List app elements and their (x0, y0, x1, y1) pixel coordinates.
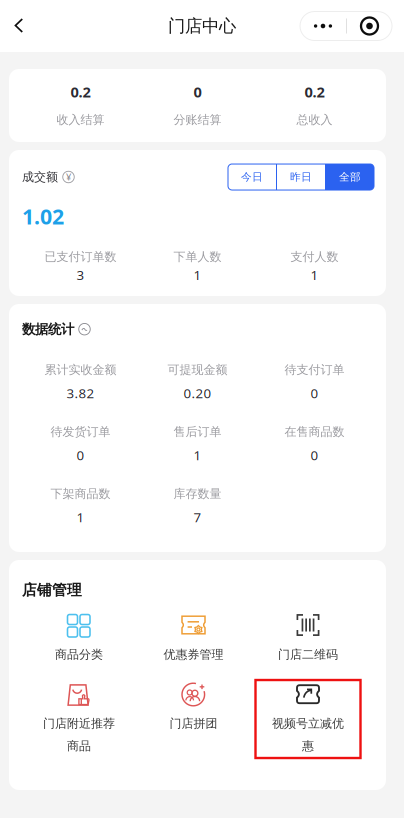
staticText: 店铺管理 (22, 581, 82, 599)
staticText: 1 (76, 508, 84, 526)
staticText: 视频号立减优 (272, 716, 344, 731)
staticText: 3.82 (66, 384, 94, 402)
staticText: 1 (193, 446, 201, 464)
staticText: 0 (310, 446, 318, 464)
staticText: 待发货订单 (50, 424, 110, 439)
staticText: 售后订单 (173, 424, 221, 439)
staticText: 0 (76, 446, 84, 464)
button[interactable]: 今日 (228, 164, 276, 190)
staticText: 门店附近推荐 (43, 716, 115, 731)
staticText: 商品分类 (55, 647, 103, 662)
staticText: 数据统计 (22, 321, 74, 337)
staticText: 已支付订单数 (44, 249, 116, 264)
staticText: 0.20 (183, 384, 211, 402)
staticText: 总收入 (296, 112, 332, 127)
staticText: 分账结算 (173, 112, 221, 127)
staticText: 门店拼团 (169, 716, 217, 731)
staticText: 收入结算 (56, 112, 104, 127)
staticText: 0 (310, 384, 318, 402)
staticText: 下单人数 (173, 249, 221, 264)
staticText: 7 (193, 508, 201, 526)
staticText: 今日 (241, 170, 263, 183)
button[interactable]: 昨日 (277, 164, 325, 190)
button[interactable]: 视频号立减优 (251, 680, 365, 758)
staticText: 累计实收金额 (44, 362, 116, 377)
button[interactable]: 门店拼团 (136, 680, 251, 758)
button[interactable]: 全部 (326, 164, 374, 190)
staticText: 成交额 (22, 170, 58, 184)
staticText: ¥ (66, 171, 71, 183)
staticText: 0.2 (70, 82, 90, 101)
staticText: 商品 (67, 739, 91, 753)
staticText: 1 (193, 266, 201, 284)
staticText: 库存数量 (173, 486, 221, 501)
staticText: 全部 (339, 170, 361, 183)
staticText: 在售商品数 (284, 424, 344, 439)
staticText: 昨日 (290, 170, 312, 183)
staticText: 0.2 (304, 82, 324, 101)
button[interactable]: 商品分类 (22, 611, 136, 680)
button[interactable]: More (300, 11, 346, 40)
staticText: 门店二维码 (278, 647, 338, 662)
button[interactable]: 门店二维码 (251, 611, 365, 680)
staticText: 3 (76, 266, 84, 284)
button[interactable]: Close (347, 11, 392, 40)
staticText: 0 (193, 82, 201, 101)
button[interactable]: 优惠券管理 (136, 611, 251, 680)
staticText: 待支付订单 (284, 362, 344, 377)
staticText: 支付人数 (290, 249, 338, 264)
staticText: 下架商品数 (50, 486, 110, 501)
staticText: 惠 (302, 739, 314, 753)
staticText: 1 (310, 266, 318, 284)
staticText: 可提现金额 (167, 362, 227, 377)
button[interactable]: 门店附近推荐 (22, 680, 136, 758)
staticText: 1.02 (22, 202, 64, 230)
button[interactable]: Back (0, 4, 38, 48)
staticText: 门店中心 (168, 15, 236, 37)
staticText: 优惠券管理 (163, 647, 223, 662)
